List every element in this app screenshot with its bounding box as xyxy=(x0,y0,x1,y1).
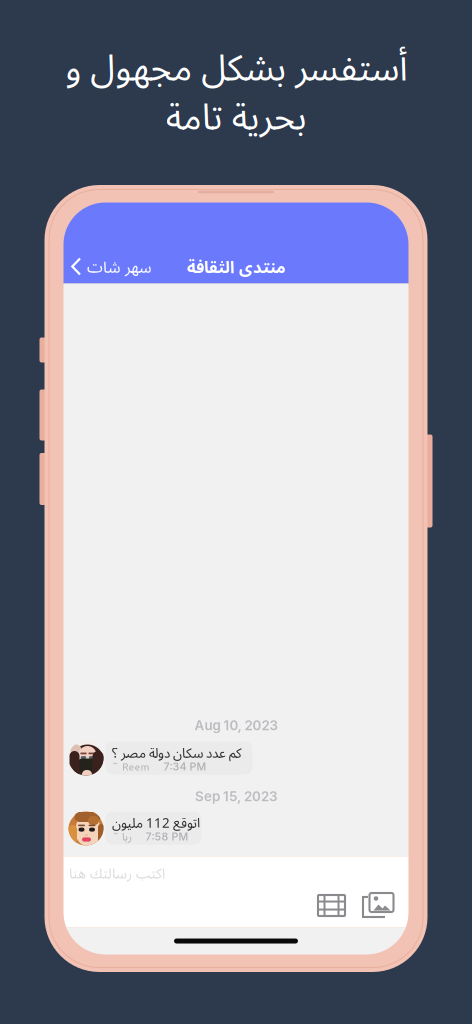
button[interactable]: سهر شات xyxy=(63,252,158,281)
button[interactable]: Attach video xyxy=(317,894,345,916)
staticText: Aug 10, 2023 xyxy=(194,717,277,733)
staticText: كم عدد سكان دولة مصر ؟ xyxy=(111,743,240,762)
staticText: اكتب رسالتك هنا xyxy=(68,863,164,883)
staticText: 7:34 PM xyxy=(163,760,206,773)
staticText: Sep 15, 2023 xyxy=(195,788,277,804)
staticText: ربا ~ xyxy=(111,829,131,844)
staticText: أستفسر بشكل مجهول و بحرية تامة xyxy=(65,42,407,140)
button[interactable]: Attach photo xyxy=(362,892,394,918)
staticText: ~ Reem xyxy=(111,759,149,774)
staticText: اتوقع 112 مليون xyxy=(111,813,199,832)
staticText: منتدى الثقافة xyxy=(186,255,285,278)
staticText: سهر شات xyxy=(86,256,151,277)
staticText: 7:58 PM xyxy=(145,830,188,843)
